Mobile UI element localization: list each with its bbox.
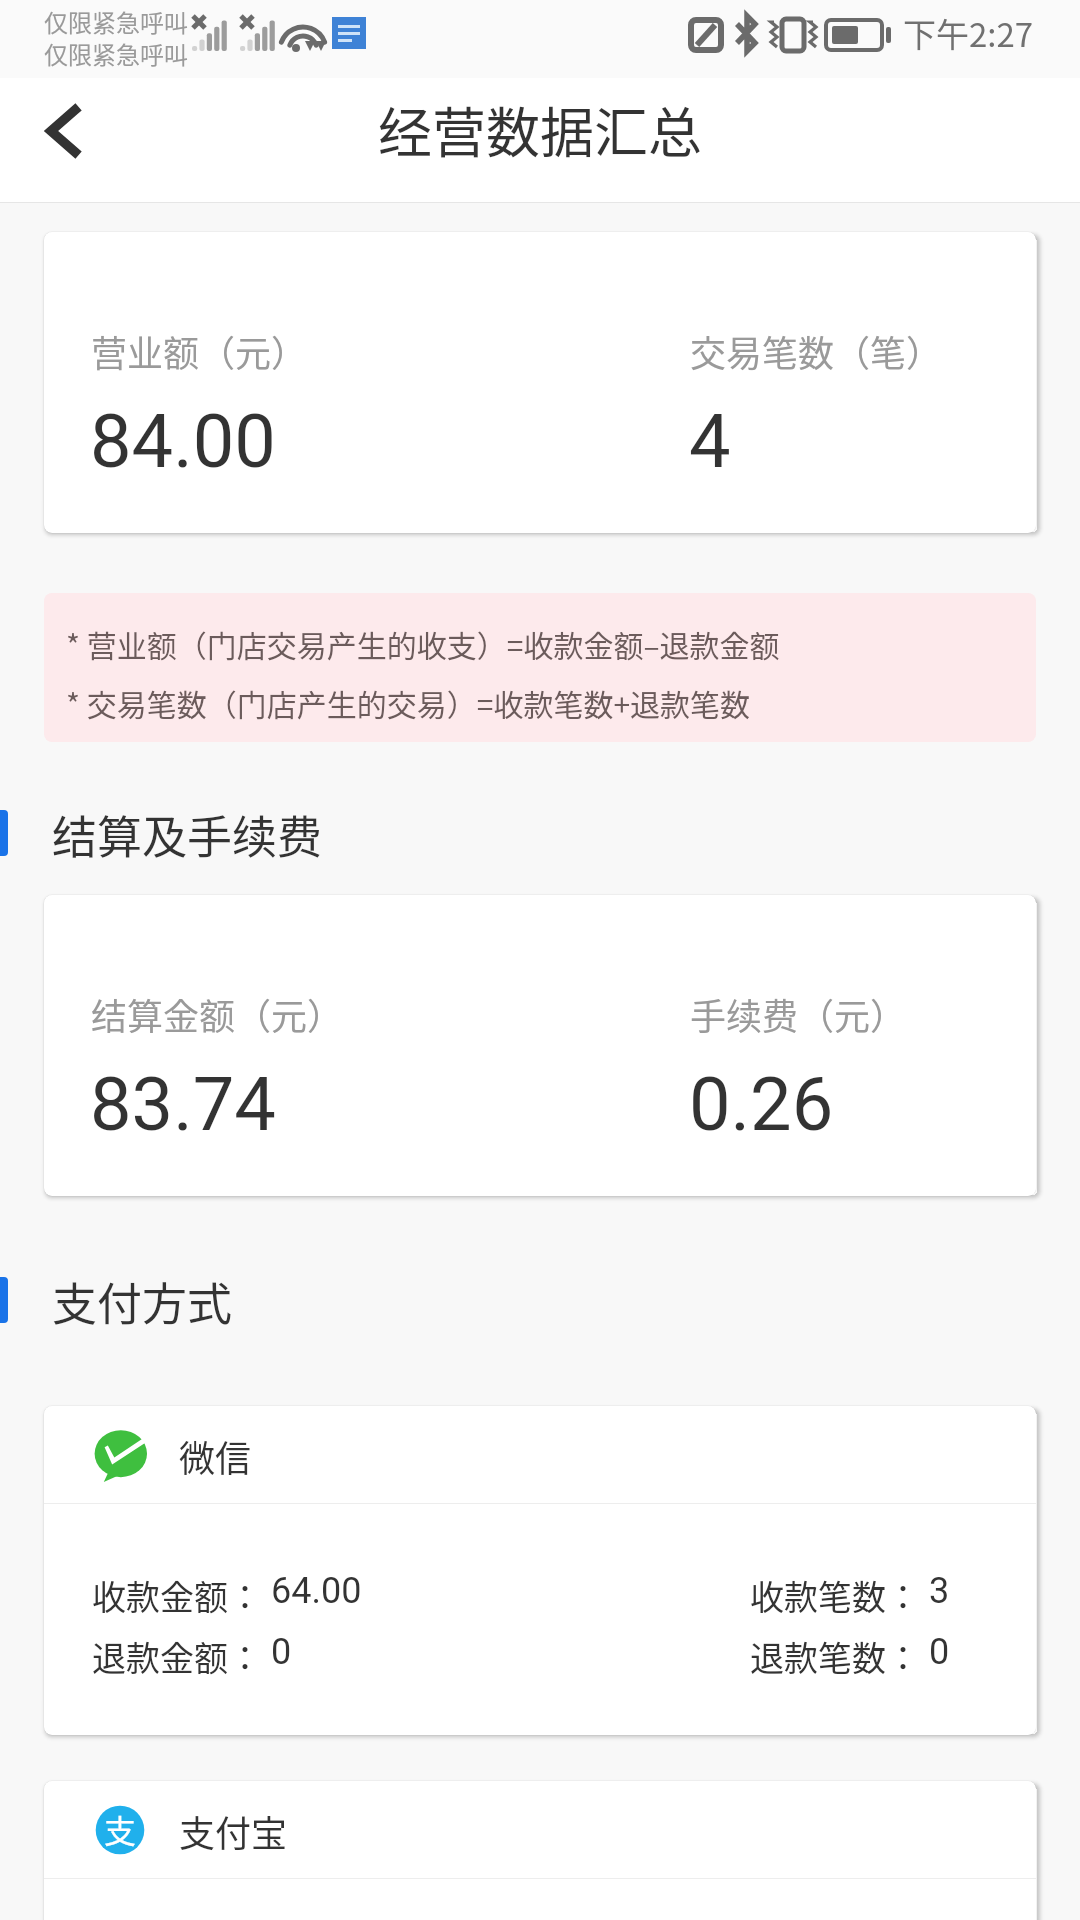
staticText: 64.00	[271, 1570, 362, 1612]
staticText: 结算金额（元）	[91, 988, 344, 1040]
staticText: 4	[689, 398, 731, 485]
staticText: 交易笔数（笔）	[690, 325, 943, 377]
staticText: 0	[271, 1631, 292, 1673]
staticText: 收款金额：	[92, 1571, 262, 1620]
staticText: 支	[104, 1806, 137, 1852]
staticText: 营业额（元）	[91, 325, 308, 377]
staticText: 经营数据汇总	[378, 90, 702, 168]
staticText: 仅限紧急呼叫	[44, 4, 188, 39]
staticText: 退款笔数：	[750, 1632, 920, 1681]
staticText: 收款笔数：	[750, 1571, 920, 1620]
button[interactable]: Back	[6, 88, 111, 193]
staticText: 支付宝	[179, 1805, 288, 1857]
staticText: 仅限紧急呼叫	[44, 36, 188, 71]
staticText: 83.74	[90, 1061, 276, 1148]
staticText: 3	[929, 1570, 950, 1612]
staticText: 手续费（元）	[690, 988, 907, 1040]
button[interactable]: 支	[44, 1781, 1036, 1920]
staticText: 下午2:27	[903, 9, 1034, 57]
staticText: 0	[929, 1631, 950, 1673]
button[interactable]: 微信	[44, 1406, 1036, 1735]
staticText: * 交易笔数（门店产生的交易）=收款笔数+退款笔数	[66, 681, 751, 724]
staticText: 支付方式	[52, 1269, 233, 1334]
staticText: * 营业额（门店交易产生的收支）=收款金额–退款金额	[66, 622, 780, 665]
staticText: 84.00	[90, 398, 276, 485]
staticText: 0.26	[689, 1061, 834, 1148]
staticText: 退款金额：	[92, 1632, 262, 1681]
staticText: 微信	[179, 1430, 252, 1482]
staticText: 结算及手续费	[52, 802, 323, 867]
